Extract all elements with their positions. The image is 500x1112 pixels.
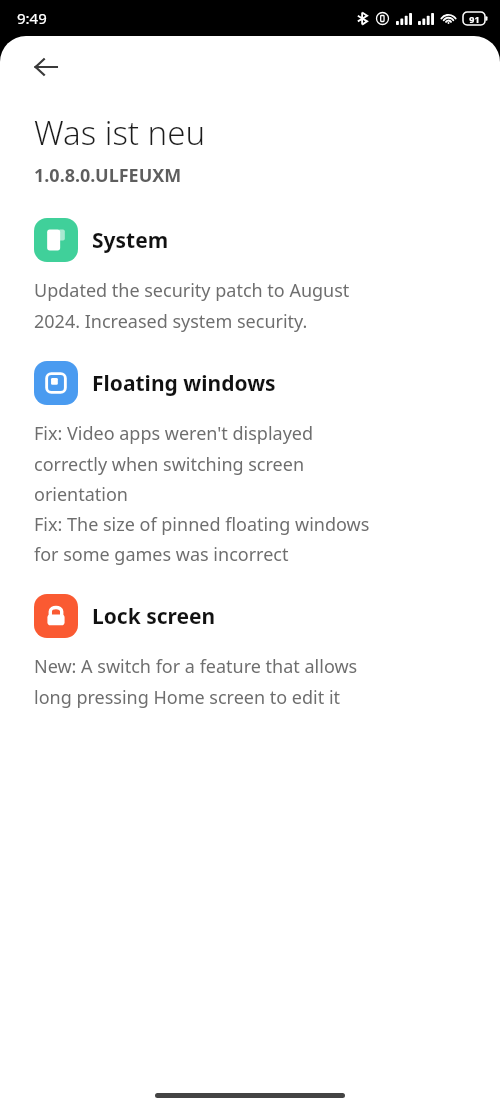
staticText: Floating windows <box>92 369 276 398</box>
button[interactable]: Floating windows <box>0 359 500 407</box>
staticText: Fix: Video apps weren't displayed correc… <box>34 421 370 566</box>
staticText: Updated the security patch to August 202… <box>34 278 350 333</box>
button[interactable]: Lock screen <box>0 592 500 640</box>
staticText: 91 <box>469 13 480 25</box>
button[interactable]: System <box>0 216 500 264</box>
staticText: Was ist neu <box>34 110 206 155</box>
staticText: 1.0.8.0.ULFEUXM <box>34 163 182 188</box>
staticText: 9:49 <box>17 8 47 28</box>
staticText: New: A switch for a feature that allows … <box>34 654 358 709</box>
staticText: Lock screen <box>92 602 216 631</box>
staticText: System <box>92 226 169 255</box>
button[interactable]: Back <box>22 43 70 91</box>
